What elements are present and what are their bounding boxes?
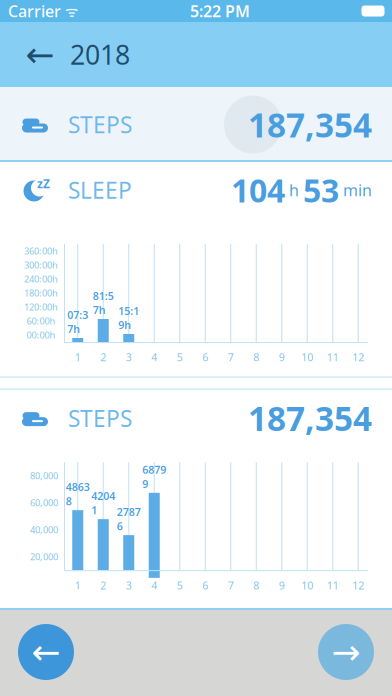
staticText: min bbox=[339, 179, 372, 201]
staticText: 12 bbox=[352, 578, 364, 592]
staticText: 00:00h bbox=[26, 329, 55, 341]
staticText: 8 bbox=[253, 350, 259, 364]
staticText: 6 bbox=[202, 578, 208, 592]
staticText: 9 bbox=[279, 350, 285, 364]
staticText: 6 bbox=[202, 350, 208, 364]
staticText: 15:19h bbox=[118, 304, 139, 332]
staticText: 180:00h bbox=[24, 287, 58, 299]
staticText: 80,000 bbox=[30, 469, 58, 482]
staticText: 68799 bbox=[142, 462, 166, 491]
staticText: 8 bbox=[253, 578, 259, 592]
staticText: ← bbox=[25, 35, 54, 74]
staticText: 2018 bbox=[70, 37, 130, 72]
staticText: 7 bbox=[228, 578, 234, 592]
staticText: 3 bbox=[126, 578, 132, 592]
staticText: 104 bbox=[231, 169, 285, 211]
button[interactable]: Previous year bbox=[18, 624, 74, 680]
staticText: 300:00h bbox=[24, 259, 58, 271]
staticText: STEPS bbox=[68, 403, 132, 433]
staticText: 42041 bbox=[91, 489, 115, 517]
staticText: 07:37h bbox=[67, 308, 88, 336]
staticText: → bbox=[331, 632, 360, 672]
staticText: 4 bbox=[151, 578, 157, 592]
button[interactable]: Back bbox=[14, 26, 66, 82]
staticText: 1 bbox=[75, 350, 81, 364]
staticText: SLEEP bbox=[68, 175, 132, 205]
staticText: 240:00h bbox=[24, 273, 58, 285]
staticText: 187,354 bbox=[248, 396, 372, 440]
staticText: 120:00h bbox=[24, 301, 58, 313]
staticText: 11 bbox=[327, 350, 339, 364]
staticText: 53 bbox=[303, 169, 339, 211]
staticText: 7 bbox=[228, 350, 234, 364]
staticText: 3 bbox=[126, 350, 132, 364]
staticText: 2 bbox=[100, 578, 106, 592]
staticText: 40,000 bbox=[30, 523, 58, 536]
staticText: 48638 bbox=[66, 480, 90, 508]
staticText: 5:22 PM bbox=[190, 0, 250, 22]
staticText: 5 bbox=[177, 578, 183, 592]
staticText: 360:00h bbox=[24, 245, 58, 257]
staticText: 5 bbox=[177, 350, 183, 364]
staticText: 2 bbox=[100, 350, 106, 364]
staticText: Carrier bbox=[8, 0, 61, 22]
staticText: 11 bbox=[327, 578, 339, 592]
staticText: 9 bbox=[279, 578, 285, 592]
staticText: 10 bbox=[301, 350, 313, 364]
staticText: STEPS bbox=[68, 109, 132, 139]
staticText: ← bbox=[31, 632, 60, 672]
staticText: 20,000 bbox=[30, 550, 58, 563]
staticText: 12 bbox=[352, 350, 364, 364]
staticText: 81:57h bbox=[93, 289, 114, 317]
staticText: 60:00h bbox=[26, 315, 55, 327]
staticText: zZ bbox=[37, 175, 50, 191]
staticText: 60,000 bbox=[30, 496, 58, 509]
staticText: 1 bbox=[75, 578, 81, 592]
staticText: h bbox=[285, 179, 303, 201]
staticText: 4 bbox=[151, 350, 157, 364]
staticText: 27876 bbox=[117, 505, 141, 533]
staticText: 187,354 bbox=[248, 102, 372, 147]
button[interactable]: Next year bbox=[318, 624, 374, 680]
staticText: 10 bbox=[301, 578, 313, 592]
staticText: ᯤ bbox=[61, 1, 78, 21]
